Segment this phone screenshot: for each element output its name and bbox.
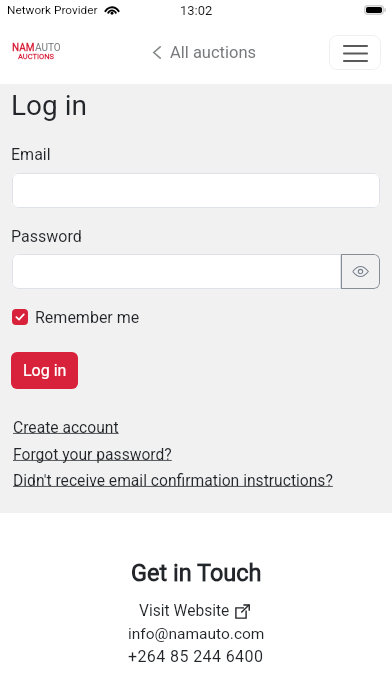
staticText: All auctions xyxy=(170,43,257,62)
button[interactable]: All auctions xyxy=(153,43,257,62)
staticText: Visit Website xyxy=(139,602,230,620)
staticText: AUCTIONS xyxy=(18,52,54,61)
staticText: Log in xyxy=(23,361,67,380)
staticText: Get in Touch xyxy=(131,559,262,587)
staticText: info@namauto.com xyxy=(128,625,265,643)
button[interactable]: Password field xyxy=(12,254,341,289)
button[interactable]: Remember me xyxy=(12,306,140,328)
staticText: +264 85 244 6400 xyxy=(128,647,264,666)
staticText: Create account xyxy=(13,418,119,436)
staticText: 13:02 xyxy=(180,3,213,18)
button[interactable]: Log in xyxy=(11,352,78,389)
button[interactable]: Visit Website xyxy=(139,602,250,620)
button[interactable]: Email field xyxy=(12,173,380,208)
staticText: Remember me xyxy=(35,308,140,327)
button[interactable]: Create account xyxy=(13,418,119,436)
staticText: Log in xyxy=(11,89,87,122)
button[interactable]: Menu xyxy=(329,35,381,70)
staticText: Password xyxy=(11,227,82,246)
staticText: NAM xyxy=(12,42,35,54)
staticText: Forgot your password? xyxy=(13,445,172,463)
button[interactable]: Didn't receive email confirmation instru… xyxy=(13,471,333,489)
staticText: Email xyxy=(11,145,51,164)
staticText: AUTO xyxy=(35,42,61,54)
button[interactable]: Show password xyxy=(341,254,380,289)
staticText: Network Provider xyxy=(7,3,98,17)
button[interactable]: Forgot your password? xyxy=(13,445,172,463)
staticText: Didn't receive email confirmation instru… xyxy=(13,471,333,489)
